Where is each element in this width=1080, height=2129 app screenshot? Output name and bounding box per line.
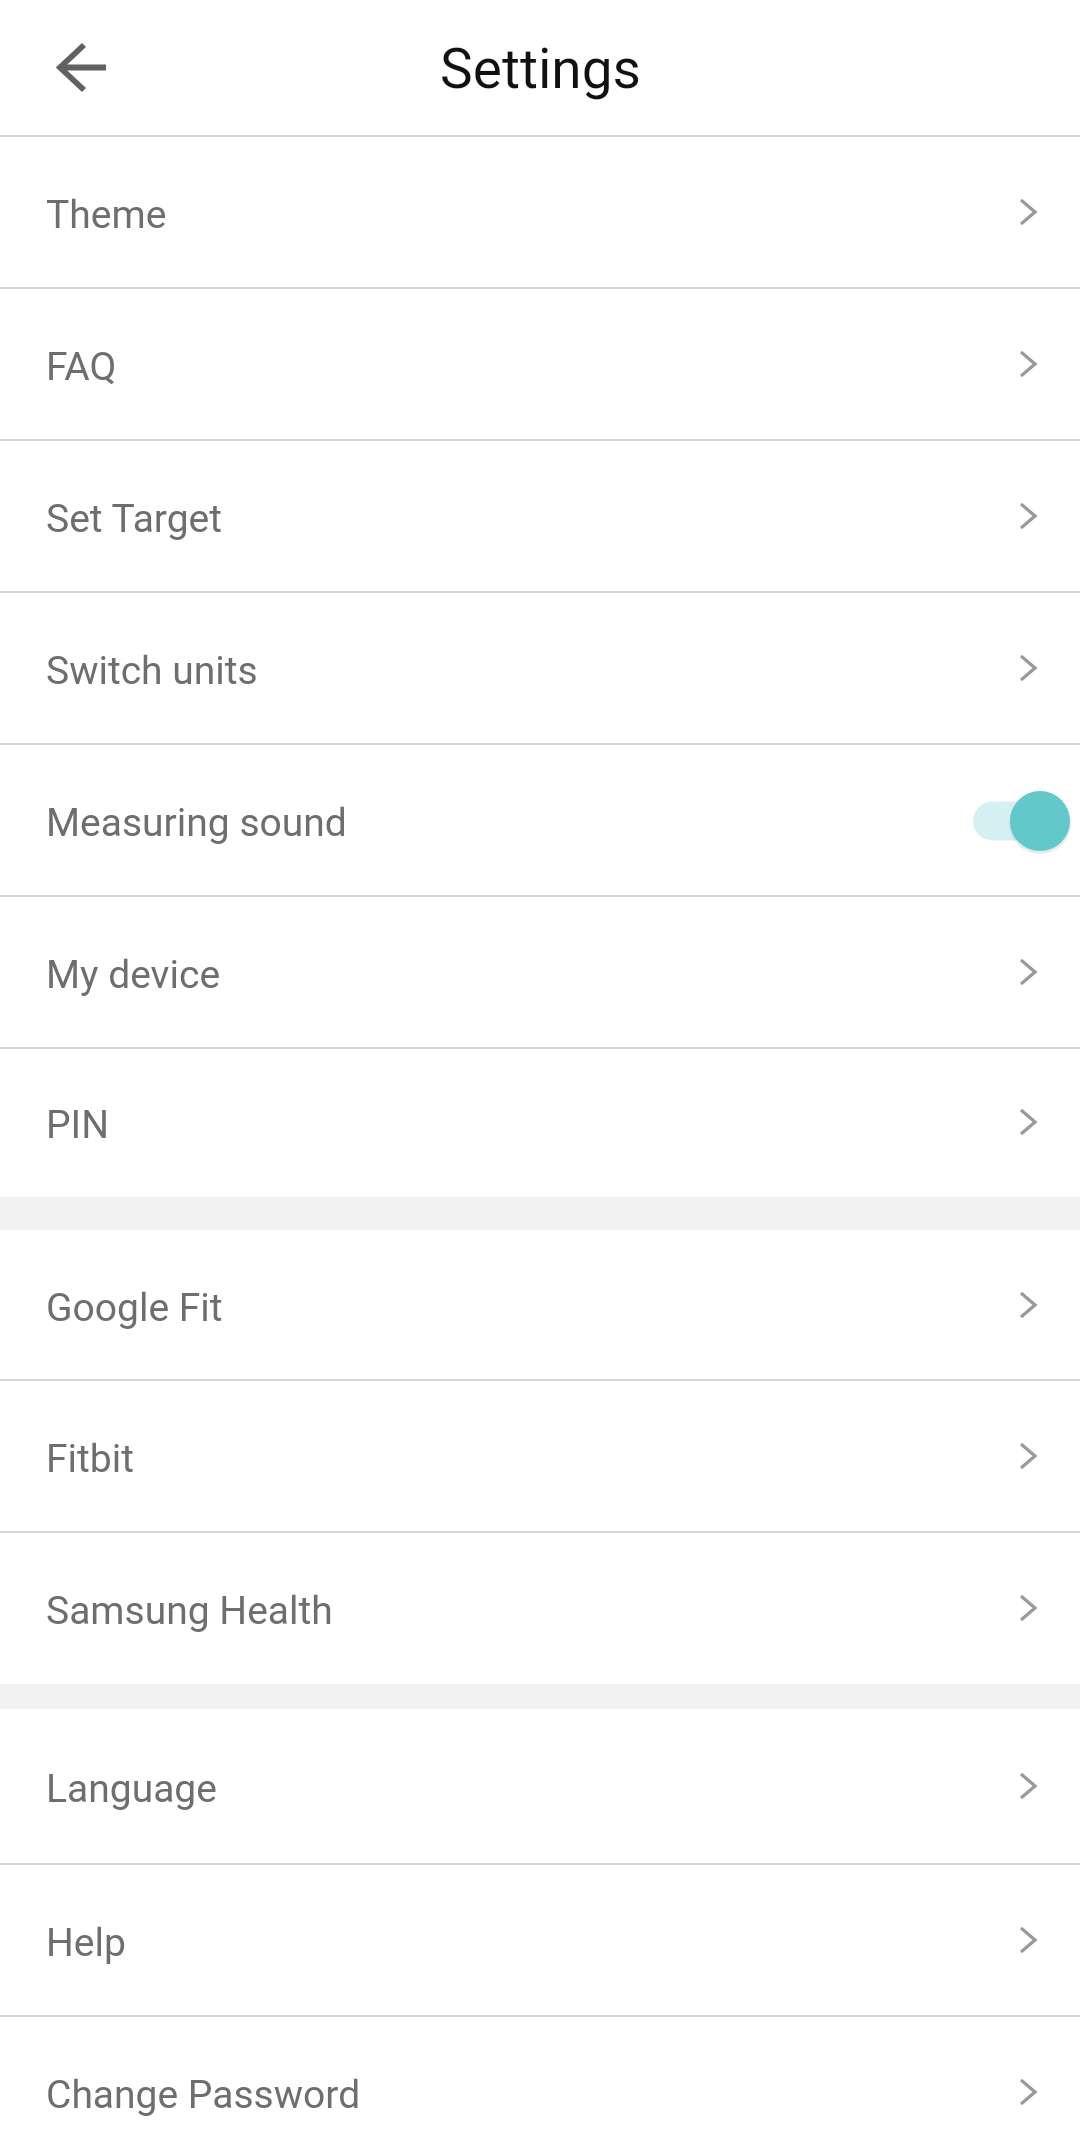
button[interactable]: Set Target: [0, 441, 1080, 593]
button[interactable]: My device: [0, 897, 1080, 1049]
staticText: Theme: [46, 192, 167, 238]
staticText: Settings: [440, 37, 641, 101]
staticText: Change Password: [46, 2072, 361, 2118]
staticText: Samsung Health: [46, 1588, 333, 1634]
button[interactable]: Language: [0, 1709, 1080, 1865]
button[interactable]: Measuring sound: [0, 745, 1080, 897]
staticText: Google Fit: [46, 1285, 223, 1331]
button[interactable]: Change Password: [0, 2017, 1080, 2129]
button[interactable]: Help: [0, 1865, 1080, 2017]
staticText: My device: [46, 952, 221, 998]
staticText: Language: [46, 1766, 217, 1812]
staticText: Fitbit: [46, 1436, 134, 1482]
button[interactable]: FAQ: [0, 289, 1080, 441]
staticText: FAQ: [46, 344, 117, 390]
button[interactable]: Google Fit: [0, 1230, 1080, 1381]
staticText: Switch units: [46, 648, 258, 694]
staticText: PIN: [46, 1102, 110, 1148]
button[interactable]: PIN: [0, 1049, 1080, 1197]
staticText: Measuring sound: [46, 800, 347, 846]
staticText: Set Target: [46, 496, 223, 542]
button[interactable]: Back: [12, 0, 156, 136]
button[interactable]: Samsung Health: [0, 1533, 1080, 1684]
button[interactable]: Fitbit: [0, 1381, 1080, 1533]
button[interactable]: Theme: [0, 137, 1080, 289]
button[interactable]: Switch units: [0, 593, 1080, 745]
staticText: Help: [46, 1920, 126, 1966]
